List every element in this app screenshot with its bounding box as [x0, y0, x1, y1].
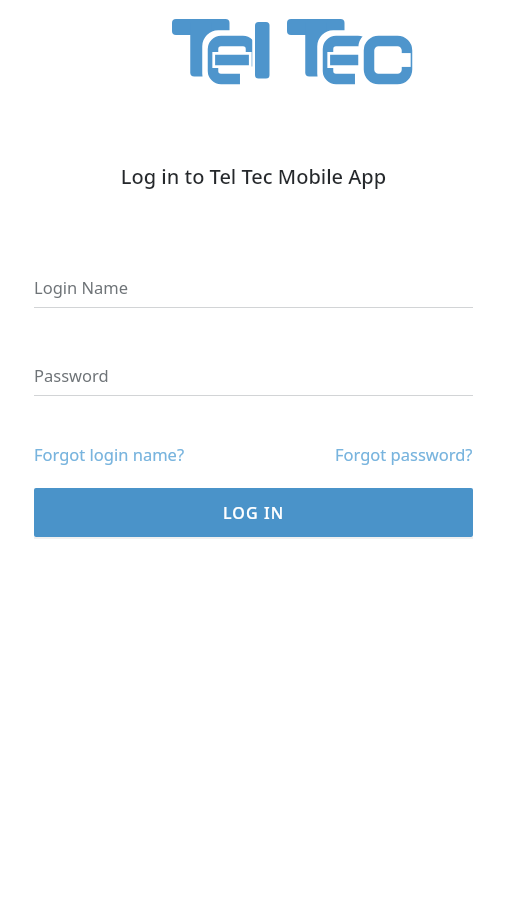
staticText: Log in to Tel Tec Mobile App	[0, 163, 507, 190]
staticText: LOG IN	[223, 502, 285, 524]
button[interactable]: Forgot login name?	[34, 441, 185, 467]
staticText: Forgot login name?	[34, 443, 185, 465]
button[interactable]: Password	[34, 364, 473, 396]
button[interactable]: LOG IN	[34, 488, 473, 537]
button[interactable]: Login Name	[34, 276, 473, 308]
button[interactable]: Forgot password?	[335, 441, 473, 467]
other: Tel Tec logo	[172, 16, 336, 87]
staticText: Forgot password?	[335, 443, 473, 465]
staticText: Password	[34, 364, 109, 386]
staticText: Login Name	[34, 276, 129, 298]
